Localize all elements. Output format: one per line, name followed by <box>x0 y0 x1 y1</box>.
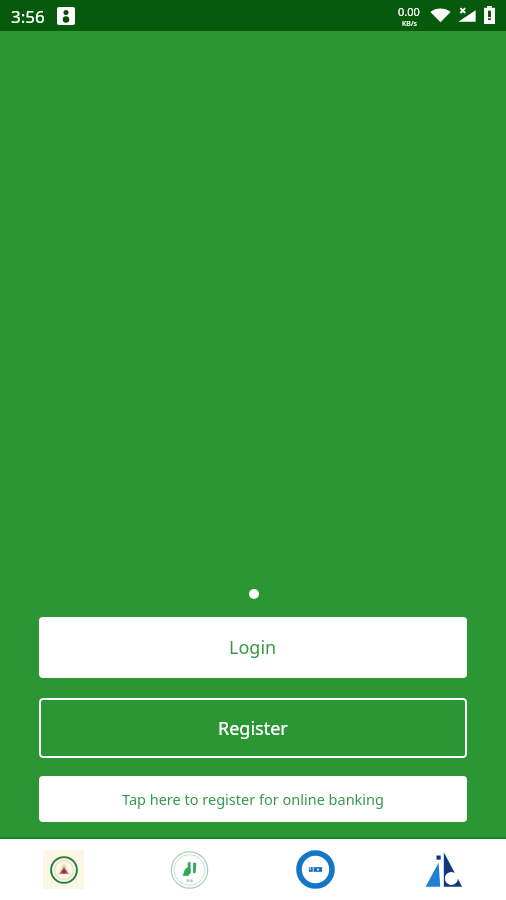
button[interactable]: Register <box>39 698 467 758</box>
staticText: Login <box>229 635 277 660</box>
button[interactable]: Certification <box>252 850 379 889</box>
button[interactable]: Tap here to register for online banking <box>39 776 467 822</box>
staticText: KB/s <box>402 19 417 29</box>
button[interactable]: Developer logo <box>379 849 506 891</box>
staticText: 0.00 <box>398 4 420 19</box>
button[interactable]: Government emblem <box>0 850 126 889</box>
button[interactable]: Login <box>39 617 467 678</box>
staticText: 3:56 <box>11 5 45 28</box>
button[interactable]: Bank seal <box>126 851 252 889</box>
staticText: Register <box>218 716 288 741</box>
staticText: Tap here to register for online banking <box>122 789 384 809</box>
